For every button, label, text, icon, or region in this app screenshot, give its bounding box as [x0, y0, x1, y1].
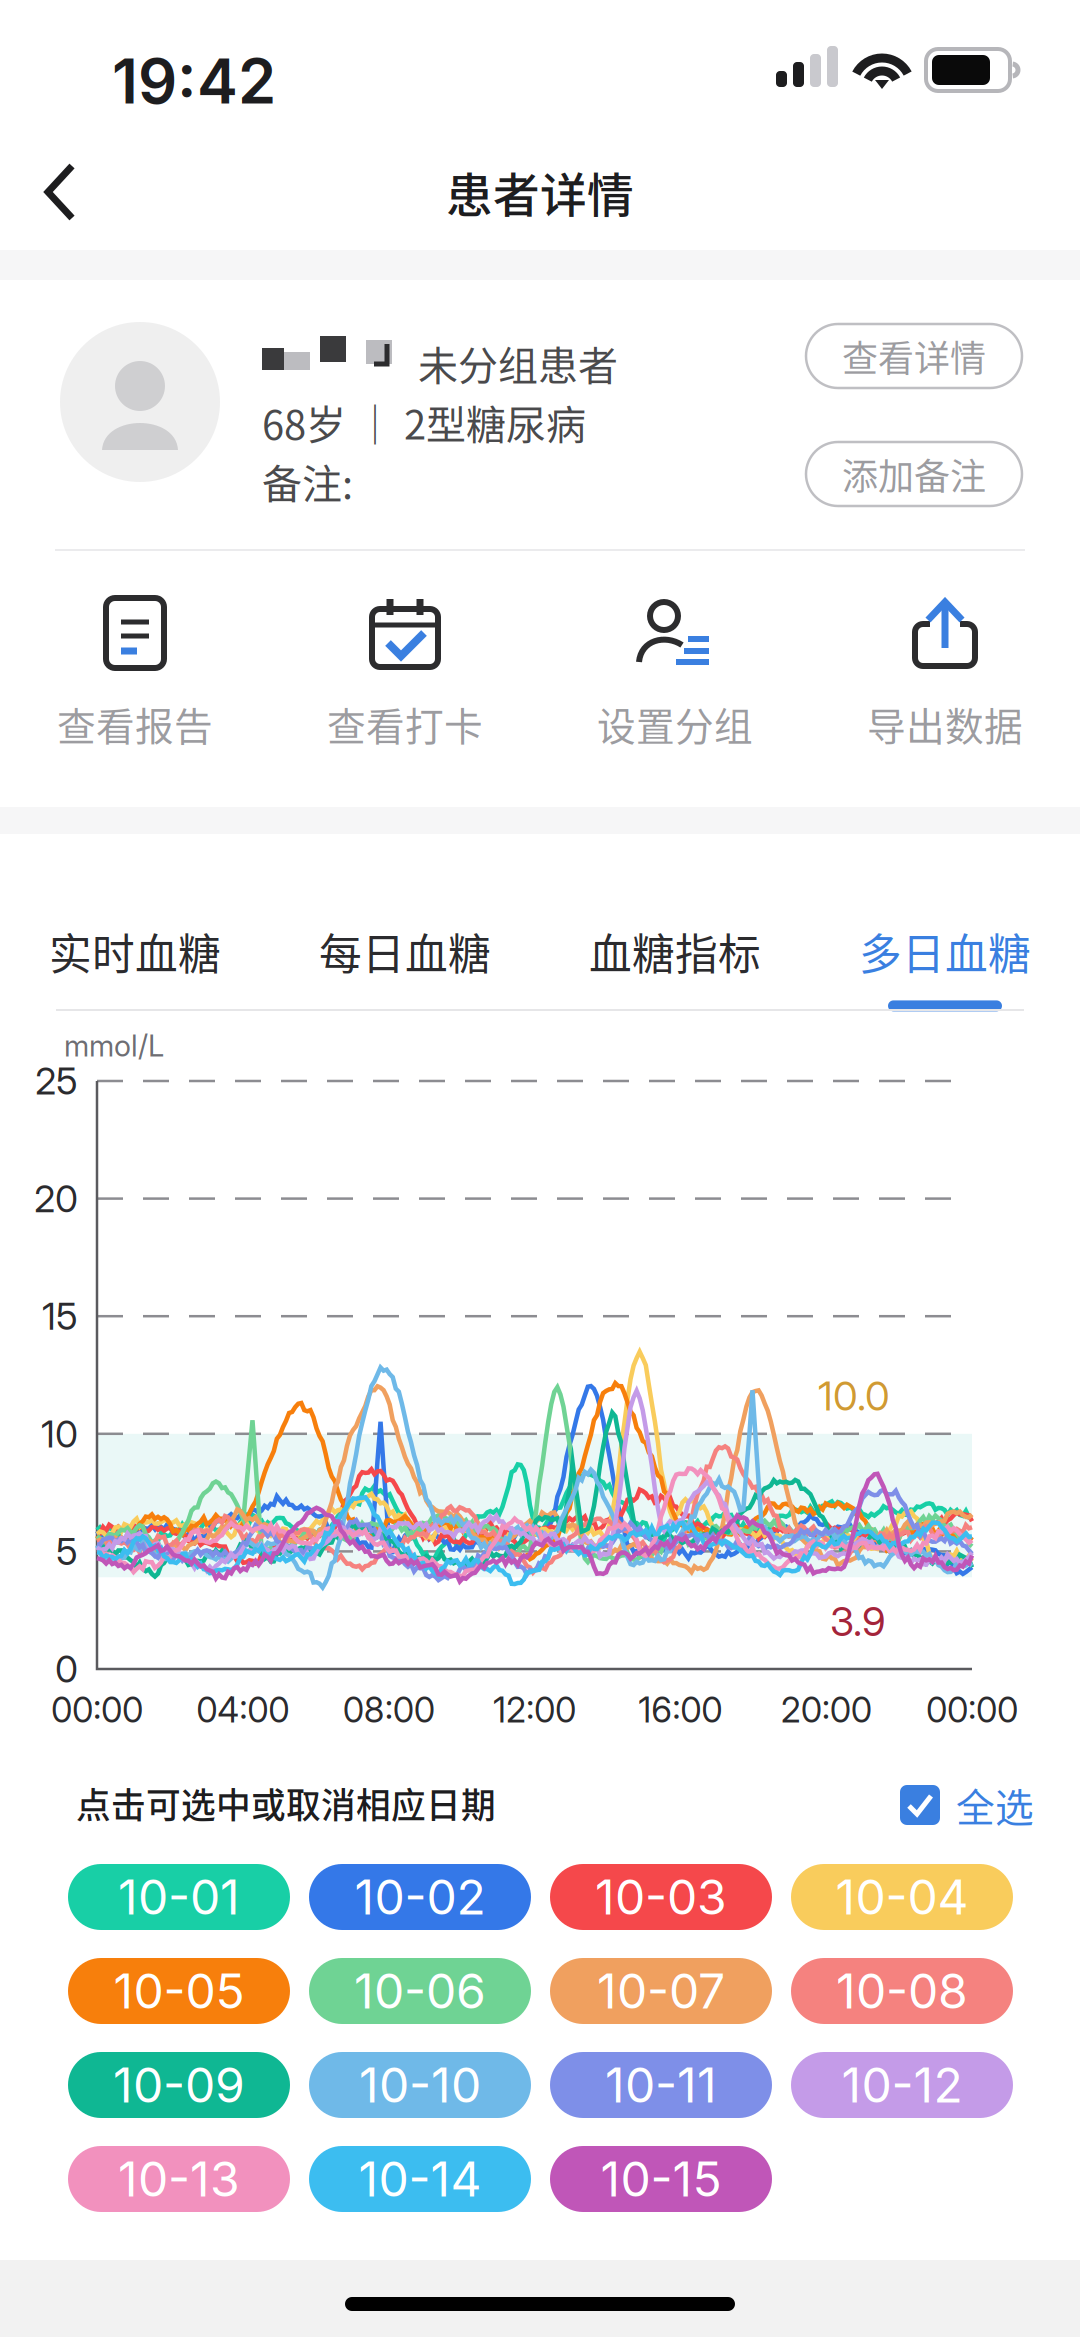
staticText: 5	[56, 1529, 78, 1574]
button[interactable]: 10-01	[68, 1864, 290, 1930]
staticText: 10-07	[597, 1962, 725, 2020]
staticText: 00:00	[51, 1689, 143, 1731]
button[interactable]: 查看详情	[806, 324, 1022, 388]
staticText: 15	[42, 1294, 78, 1339]
staticText: 查看详情	[842, 330, 986, 382]
button[interactable]: 10-12	[791, 2052, 1013, 2118]
button[interactable]: 血糖指标	[540, 916, 810, 1016]
button[interactable]: 导出数据	[810, 594, 1080, 754]
staticText: 未分组患者	[418, 334, 618, 392]
staticText: 00:00	[926, 1689, 1018, 1731]
staticText: 08:00	[343, 1689, 435, 1731]
button[interactable]: 10-09	[68, 2052, 290, 2118]
staticText: 20:00	[781, 1689, 872, 1731]
button[interactable]: 10-11	[550, 2052, 772, 2118]
staticText: 10-10	[359, 2056, 481, 2114]
staticText: 3.9	[830, 1597, 886, 1646]
staticText: 10-02	[354, 1868, 485, 1926]
staticText: 10-06	[354, 1962, 486, 2020]
staticText: 查看报告	[57, 696, 213, 752]
staticText: 10.0	[818, 1372, 890, 1420]
button[interactable]: 10-15	[550, 2146, 772, 2212]
staticText: 患者详情	[446, 158, 634, 226]
button[interactable]: 返回	[38, 158, 92, 226]
button[interactable]: 10-05	[68, 1958, 290, 2024]
staticText: 10-03	[595, 1868, 727, 1926]
staticText: 10-09	[113, 2056, 245, 2114]
staticText: 10-15	[600, 2150, 721, 2208]
button[interactable]: 10-07	[550, 1958, 772, 2024]
button[interactable]: 10-14	[309, 2146, 531, 2212]
staticText: 68岁 ｜ 2型糖尿病	[262, 393, 586, 451]
staticText: 点击可选中或取消相应日期	[76, 1778, 496, 1828]
staticText: 多日血糖	[859, 921, 1031, 982]
staticText: 10-04	[835, 1868, 968, 1926]
button[interactable]: 10-13	[68, 2146, 290, 2212]
button[interactable]: 多日血糖	[810, 916, 1080, 1016]
button[interactable]: 查看报告	[0, 594, 270, 754]
staticText: 04:00	[196, 1689, 289, 1731]
button[interactable]: 实时血糖	[0, 916, 270, 1016]
button[interactable]: 10-03	[550, 1864, 772, 1930]
staticText: 10-01	[118, 1868, 240, 1926]
staticText: 查看打卡	[327, 696, 483, 752]
staticText: 12:00	[493, 1689, 576, 1731]
staticText: 备注:	[262, 452, 353, 510]
staticText: 19:42	[112, 44, 276, 118]
staticText: 实时血糖	[49, 921, 221, 982]
button[interactable]: 全选	[900, 1777, 1034, 1833]
button[interactable]: 10-08	[791, 1958, 1013, 2024]
staticText: 20	[34, 1176, 78, 1221]
button[interactable]: 10-04	[791, 1864, 1013, 1930]
button[interactable]: 添加备注	[806, 442, 1022, 506]
staticText: 10	[41, 1411, 78, 1456]
button[interactable]: 设置分组	[540, 594, 810, 754]
staticText: 10-14	[358, 2150, 481, 2208]
button[interactable]: 查看打卡	[270, 594, 540, 754]
staticText: 每日血糖	[319, 921, 491, 982]
staticText: 16:00	[638, 1689, 722, 1731]
staticText: 添加备注	[842, 448, 986, 500]
staticText: 10-12	[841, 2056, 962, 2114]
staticText: 全选	[956, 1777, 1034, 1833]
staticText: 10-11	[605, 2056, 717, 2114]
staticText: 导出数据	[867, 696, 1023, 752]
staticText: 血糖指标	[589, 921, 761, 982]
staticText: 25	[35, 1058, 78, 1104]
staticText: mmol/L	[64, 1028, 164, 1063]
button[interactable]: 每日血糖	[270, 916, 540, 1016]
staticText: 10-13	[118, 2150, 240, 2208]
button[interactable]: 10-10	[309, 2052, 531, 2118]
staticText: 设置分组	[597, 696, 753, 752]
staticText: 10-08	[836, 1962, 968, 2020]
button[interactable]: 10-02	[309, 1864, 531, 1930]
staticText: 10-05	[113, 1962, 244, 2020]
staticText: 0	[55, 1646, 78, 1692]
button[interactable]: 10-06	[309, 1958, 531, 2024]
